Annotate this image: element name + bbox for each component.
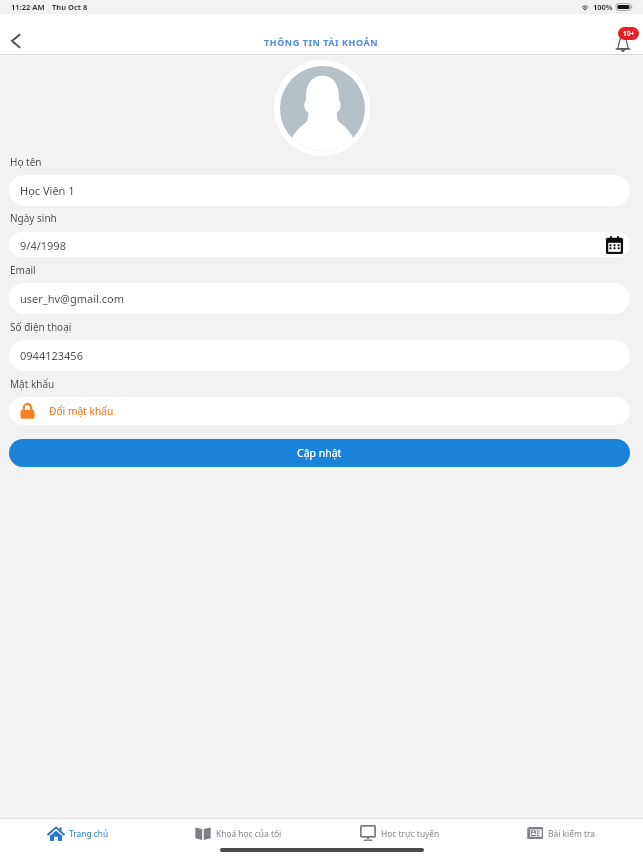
staticText: 100% xyxy=(593,2,613,12)
button[interactable]: Học Viên 1 xyxy=(9,175,630,206)
staticText: 9/4/1998 xyxy=(20,238,66,253)
staticText: Bài kiểm tra xyxy=(548,828,595,839)
button[interactable]: Notifications xyxy=(613,25,641,53)
button[interactable]: Học trực tuyến xyxy=(321,819,482,847)
staticText: THÔNG TIN TÀI KHOẢN xyxy=(264,36,379,48)
button[interactable]: 9/4/1998 xyxy=(9,232,630,257)
staticText: Trang chủ xyxy=(69,828,109,839)
staticText: 11:22 AM xyxy=(11,2,45,12)
staticText: Số điện thoại xyxy=(10,320,72,334)
staticText: Học trực tuyến xyxy=(381,828,440,839)
staticText: Đổi mật khẩu xyxy=(49,404,114,418)
staticText: Email xyxy=(10,263,36,277)
staticText: Mật khẩu xyxy=(10,377,55,391)
button[interactable]: Trang chủ xyxy=(0,819,160,847)
staticText: Cập nhật xyxy=(297,446,342,460)
staticText: Thu Oct 8 xyxy=(52,2,88,12)
button[interactable]: Khoá học của tôi xyxy=(160,819,321,847)
button[interactable]: Back xyxy=(0,26,30,55)
button[interactable]: 0944123456 xyxy=(9,340,630,371)
staticText: 0944123456 xyxy=(20,348,83,363)
staticText: Ngày sinh xyxy=(10,211,57,225)
staticText: user_hv@gmail.com xyxy=(20,291,125,306)
staticText: Họ tên xyxy=(10,155,42,169)
button[interactable]: Đổi mật khẩu xyxy=(9,397,630,425)
button[interactable]: Bài kiểm tra xyxy=(482,819,643,847)
staticText: Khoá học của tôi xyxy=(216,828,282,839)
button[interactable]: Pick date xyxy=(605,236,623,254)
button[interactable]: user_hv@gmail.com xyxy=(9,283,630,314)
staticText: Học Viên 1 xyxy=(20,183,75,198)
button[interactable]: Cập nhật xyxy=(9,439,630,467)
staticText: 10+ xyxy=(623,29,635,38)
